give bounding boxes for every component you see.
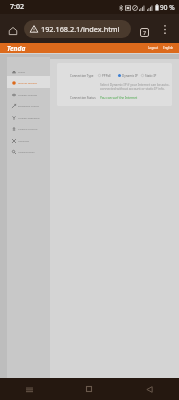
button[interactable]: English [163,46,174,50]
staticText: Wireless Settings [18,93,38,96]
staticText: Bandwidth Control [18,104,40,107]
button[interactable]: More options [157,21,173,37]
button[interactable]: 192.168.2.1/index.html [24,20,131,38]
button[interactable]: Home [59,378,119,400]
staticText: Static IP [145,74,157,78]
staticText: Advanced [18,139,29,142]
button[interactable]: PPPoE [98,72,111,79]
staticText: Connection Status [70,96,96,100]
button[interactable]: Administration [7,145,50,157]
staticText: Parental Controls [18,127,38,130]
staticText: Wireless Repeating [18,116,40,119]
button[interactable]: Wireless Repeating [7,111,50,123]
staticText: 90 % [160,3,175,12]
staticText: You can surf the Internet [100,96,138,100]
button[interactable]: Tabs [135,23,153,41]
staticText: English [163,46,174,50]
staticText: 7 [143,29,147,36]
staticText: Logout [148,46,158,50]
button[interactable]: Bandwidth Control [7,99,50,111]
button[interactable]: Parental Controls [7,122,50,134]
button[interactable]: Home [5,23,20,38]
staticText: Internet Settings [18,81,37,84]
staticText: 192.168.2.1/index.html [41,24,120,34]
staticText: Administration [18,150,35,153]
staticText: Dynamic IP [122,74,138,78]
button[interactable]: Status [7,65,50,77]
button[interactable]: Advanced [7,134,50,146]
staticText: Connection Type [70,74,94,78]
button[interactable]: Back [119,378,179,400]
button[interactable]: Logout [148,46,158,50]
button[interactable]: Recent apps [0,378,59,400]
staticText: 7:02 [10,2,24,12]
staticText: PPPoE [102,74,111,78]
button[interactable]: Static IP [141,72,157,79]
button[interactable]: Dynamic IP [118,72,138,79]
staticText: connected without account or static IP i… [100,87,165,91]
button[interactable]: Internet Settings [7,76,50,88]
staticText: Select Dynamic IP if your Internet can b… [100,83,170,87]
staticText: Status [18,70,26,73]
staticText: Tenda [7,44,26,53]
button[interactable]: Wireless Settings [7,88,50,100]
